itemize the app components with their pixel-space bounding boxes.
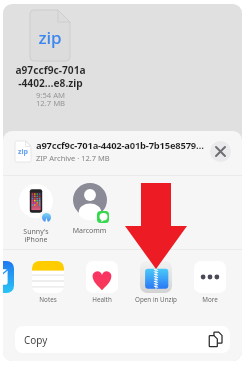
- staticText: Notes: [22, 295, 74, 304]
- staticText: Marcomm: [70, 226, 109, 236]
- staticText: Open in Unzip: [130, 295, 182, 304]
- staticText: zip: [38, 26, 62, 49]
- staticText: 9:54 AM 12.7 MB: [3, 90, 98, 108]
- button[interactable]: Close: [210, 141, 231, 162]
- button[interactable]: More: [184, 261, 236, 304]
- button[interactable]: Health: [76, 261, 128, 304]
- button[interactable]: Open in Unzip: [130, 261, 182, 304]
- staticText: zip: [18, 147, 28, 157]
- staticText: More: [184, 295, 236, 304]
- staticText: Health: [76, 295, 128, 304]
- staticText: Copy: [24, 333, 209, 347]
- staticText: a97ccf9c-701a-4402-a01b-7b15e8579…: [36, 139, 206, 152]
- button[interactable]: Marcomm: [70, 183, 109, 236]
- button[interactable]: Sunny's iPhone: [17, 184, 55, 244]
- button[interactable]: Notes: [22, 261, 74, 304]
- button[interactable]: zip: [3, 131, 242, 171]
- staticText: Sunny's iPhone: [17, 227, 55, 244]
- button[interactable]: Copy: [15, 326, 230, 353]
- staticText: a97ccf9c-701a -4402…e8.zip: [3, 63, 98, 90]
- staticText: ZIP Archive · 12.7 MB: [36, 153, 206, 163]
